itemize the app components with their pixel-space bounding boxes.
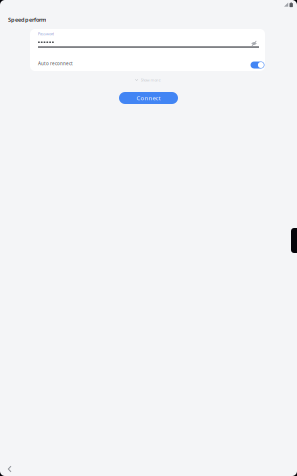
button[interactable]: Back xyxy=(3,463,15,475)
button[interactable]: Auto reconnect xyxy=(250,60,265,69)
staticText: Password xyxy=(38,31,54,36)
staticText: Auto reconnect xyxy=(38,60,73,67)
button[interactable]: Connect xyxy=(119,92,178,104)
button[interactable]: Show more xyxy=(135,77,165,83)
staticText: Speedperform xyxy=(8,16,46,23)
staticText: Connect xyxy=(136,94,160,102)
button[interactable]: Show password xyxy=(249,38,259,48)
staticText: Show more xyxy=(141,77,161,83)
